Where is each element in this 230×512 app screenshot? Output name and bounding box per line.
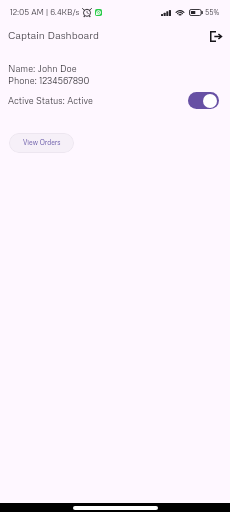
staticText: Captain Dashboard: [8, 29, 99, 42]
staticText: Phone: 1234567890: [8, 75, 90, 86]
staticText: 55%: [205, 8, 220, 17]
staticText: Active Status: Active: [8, 95, 93, 106]
staticText: View Orders: [23, 138, 61, 146]
button[interactable]: View Orders: [9, 133, 74, 153]
staticText: Name: John Doe: [8, 63, 77, 74]
button[interactable]: Active status toggle: [188, 92, 219, 109]
staticText: 12:05 AM | 6.4KB/s: [10, 7, 80, 17]
button[interactable]: Logout: [204, 24, 228, 48]
